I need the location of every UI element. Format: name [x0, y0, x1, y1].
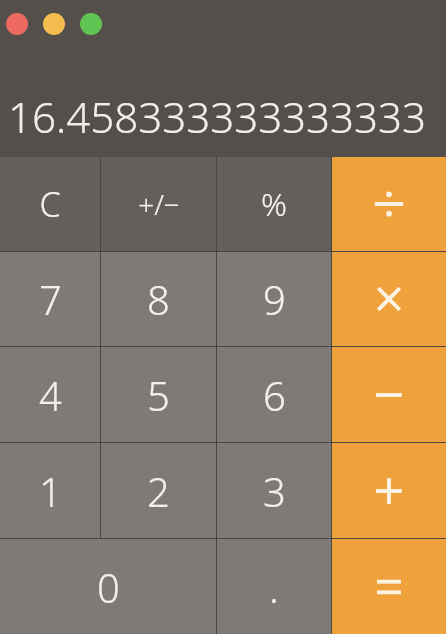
button[interactable]: Equals	[332, 539, 446, 634]
staticText: 8	[147, 272, 170, 326]
staticText: 5	[147, 368, 170, 422]
button[interactable]: 1	[0, 443, 100, 538]
staticText: 2	[147, 464, 170, 518]
button[interactable]: 4	[0, 347, 100, 442]
button[interactable]: Minus	[332, 347, 446, 442]
button[interactable]: Plus	[332, 443, 446, 538]
button[interactable]: +/−	[101, 157, 216, 251]
button[interactable]: %	[217, 157, 331, 251]
button[interactable]: C	[0, 157, 100, 251]
button[interactable]: Divide	[332, 157, 446, 251]
button[interactable]: Maximize	[80, 13, 102, 35]
staticText: 9	[263, 272, 286, 326]
staticText: 7	[39, 272, 62, 326]
button[interactable]: 0	[0, 539, 216, 634]
staticText: 6	[263, 368, 286, 422]
button[interactable]: 8	[101, 252, 216, 346]
staticText: C	[39, 181, 61, 227]
button[interactable]: Close	[6, 13, 28, 35]
staticText: 1	[39, 464, 62, 518]
button[interactable]: 9	[217, 252, 331, 346]
button[interactable]: Minimize	[43, 13, 65, 35]
button[interactable]: 5	[101, 347, 216, 442]
staticText: +/−	[138, 185, 180, 223]
button[interactable]: 7	[0, 252, 100, 346]
staticText: 3	[263, 464, 286, 518]
button[interactable]: 3	[217, 443, 331, 538]
staticText: 0	[97, 560, 120, 614]
staticText: 16.458333333333333	[0, 88, 426, 145]
button[interactable]: .	[217, 539, 331, 634]
button[interactable]: Multiply	[332, 252, 446, 346]
staticText: 4	[39, 368, 62, 422]
staticText: %	[261, 182, 287, 226]
button[interactable]: 2	[101, 443, 216, 538]
button[interactable]: 6	[217, 347, 331, 442]
staticText: .	[269, 560, 279, 614]
